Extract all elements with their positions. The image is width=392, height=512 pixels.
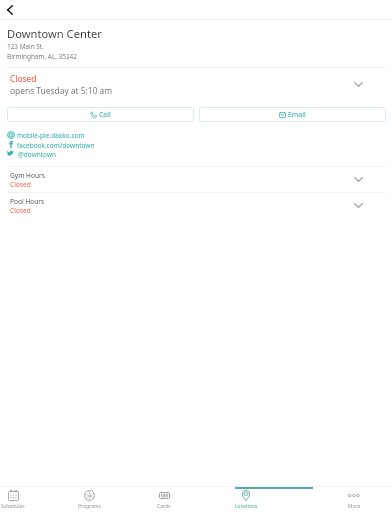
staticText: Email (288, 110, 306, 119)
button[interactable]: mobile-ple.daxko.com (0, 130, 392, 140)
button[interactable]: facebook.com/downtown (0, 140, 392, 150)
staticText: 123 Main St. (7, 42, 44, 51)
staticText: Closed (10, 206, 31, 215)
button[interactable] (235, 487, 313, 512)
staticText: Closed (10, 73, 37, 84)
button[interactable] (157, 487, 235, 512)
staticText: Schedules (1, 503, 25, 510)
button[interactable] (313, 487, 391, 512)
button[interactable] (0, 487, 78, 512)
staticText: @downtown (18, 150, 57, 159)
button[interactable]: Call (7, 107, 194, 122)
staticText: Locations (235, 503, 258, 510)
staticText: Gym Hours (10, 171, 45, 180)
button[interactable]: @downtown (0, 149, 392, 159)
staticText: More (348, 503, 361, 510)
staticText: Cards (157, 503, 171, 510)
staticText: Downtown Center (7, 26, 102, 41)
button[interactable]: Email (199, 107, 386, 122)
button[interactable] (0, 68, 392, 100)
button[interactable] (78, 487, 156, 512)
button[interactable]: Pool Hours (0, 193, 392, 218)
button[interactable]: Gym Hours (0, 167, 392, 192)
staticText: Closed (10, 180, 31, 189)
staticText: Pool Hours (10, 197, 45, 206)
staticText: mobile-ple.daxko.com (17, 131, 85, 140)
staticText: Programs (78, 503, 101, 510)
staticText: Birmingham, AL, 35242 (7, 52, 77, 61)
staticText: opens Tuesday at 5:10 am (10, 85, 113, 96)
staticText: facebook.com/downtown (17, 141, 95, 150)
button[interactable]: Back (0, 0, 19, 19)
staticText: Call (99, 110, 111, 119)
